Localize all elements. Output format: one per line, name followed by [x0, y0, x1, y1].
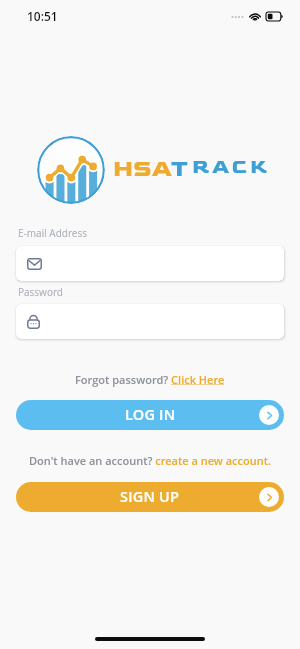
button[interactable]: LOG IN [16, 400, 284, 430]
button[interactable]: Forgot password? Click Here [75, 372, 225, 387]
staticText: 10:51 [27, 8, 58, 24]
staticText: E-mail Address [18, 226, 87, 240]
staticText: RACK [192, 155, 271, 178]
staticText: Password [18, 285, 63, 299]
staticText: LOG IN [125, 405, 176, 425]
staticText: SIGN UP [120, 487, 180, 507]
button[interactable]: Don't have an account? create a new acco… [29, 453, 272, 468]
button[interactable]: SIGN UP [16, 482, 284, 512]
button[interactable] [16, 304, 284, 339]
staticText: HSA [113, 155, 173, 178]
staticText: T [171, 155, 188, 178]
button[interactable] [16, 246, 284, 281]
